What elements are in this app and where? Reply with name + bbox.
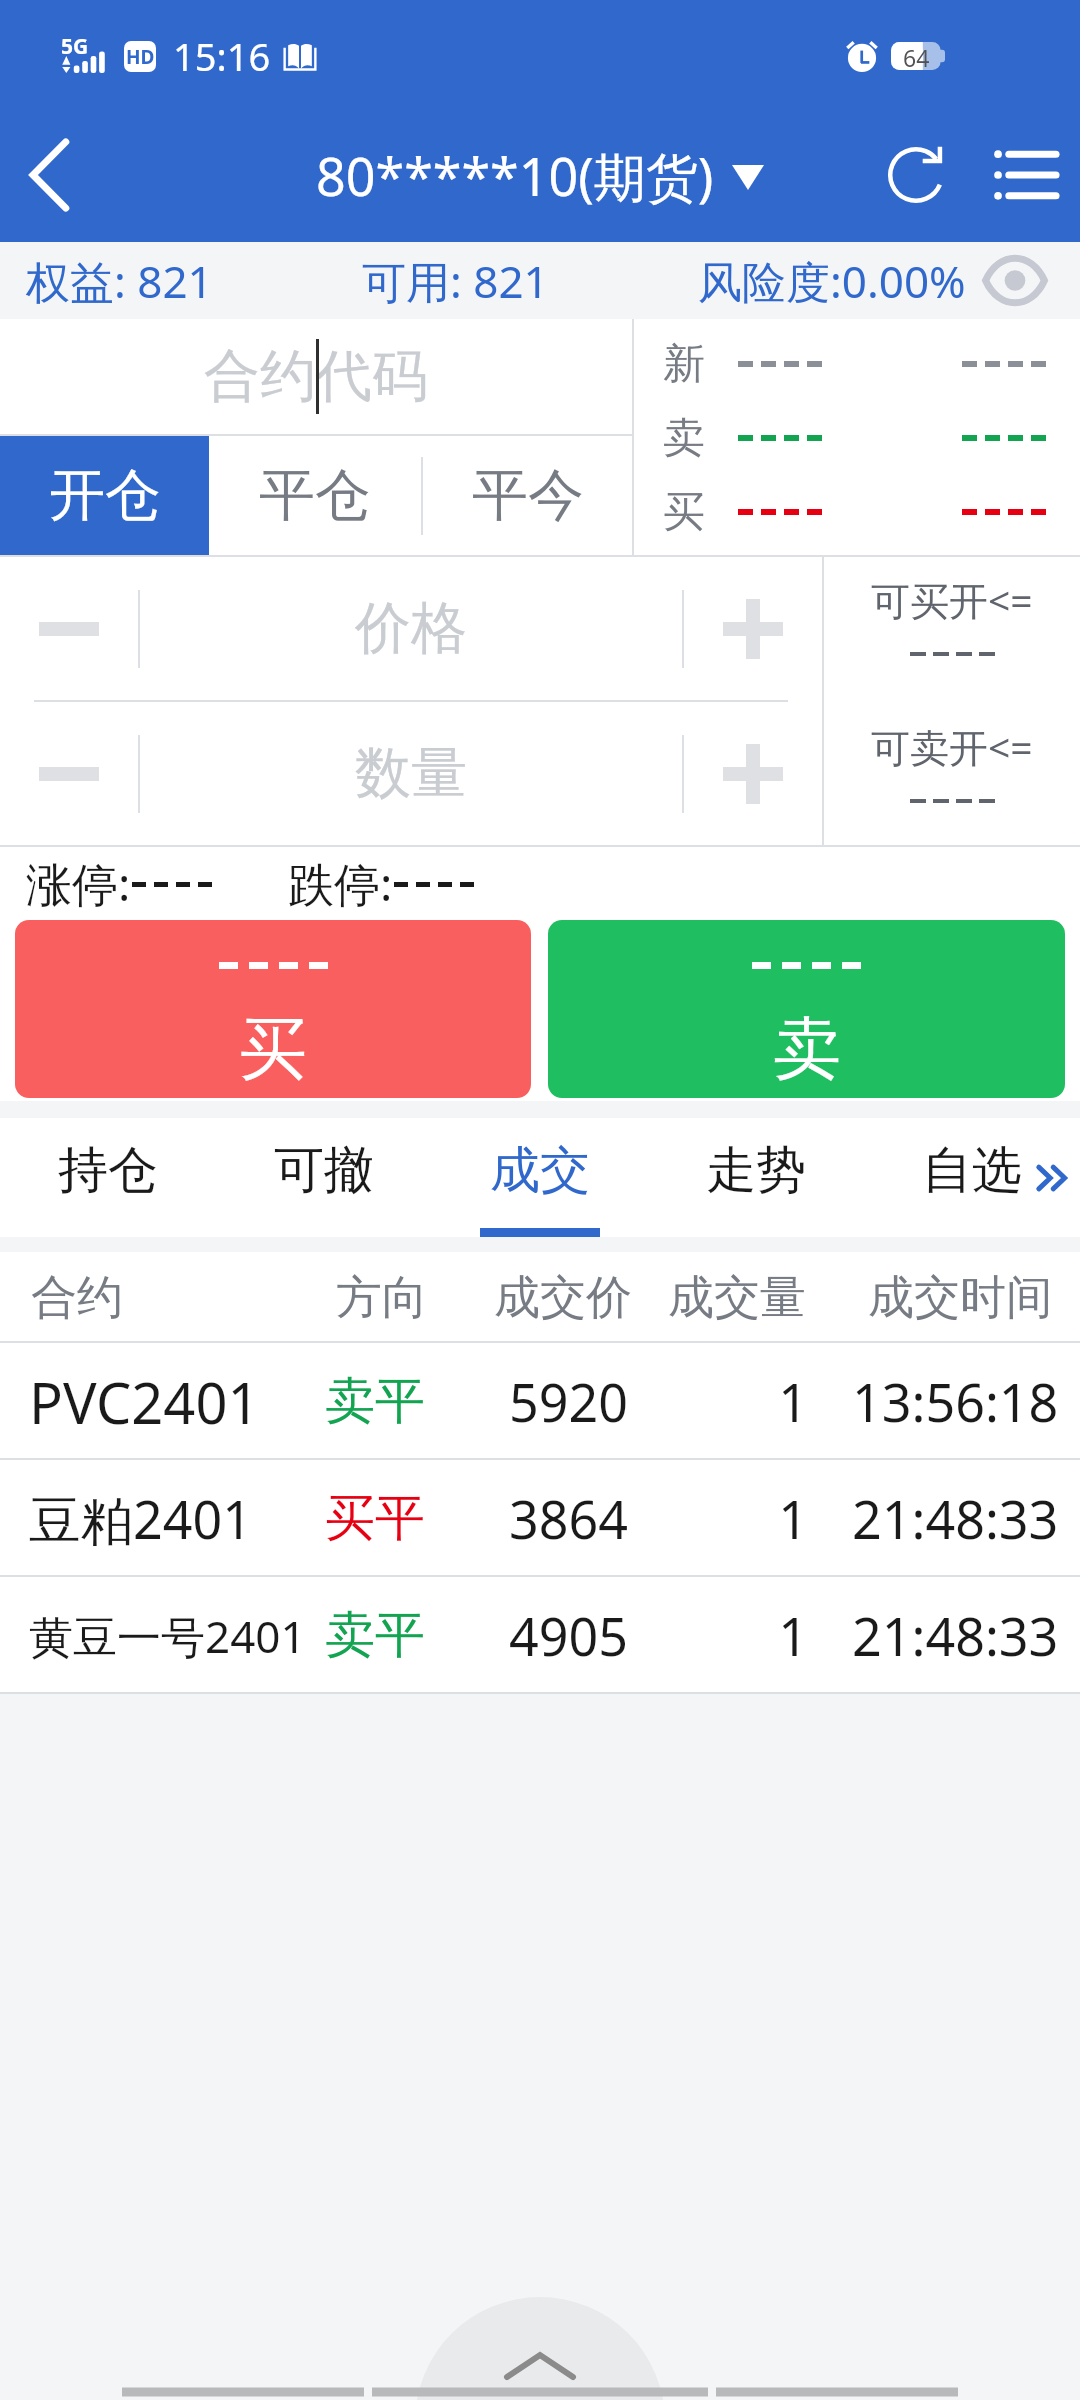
staticText: 平今 bbox=[472, 460, 584, 531]
button[interactable]: 价格 bbox=[140, 557, 682, 700]
staticText: 1 bbox=[640, 1483, 808, 1554]
staticText: 价格 bbox=[355, 593, 467, 664]
staticText: HD bbox=[126, 44, 155, 70]
button[interactable]: Decrease 价格 bbox=[0, 557, 138, 700]
staticText: PVC2401 bbox=[29, 1364, 260, 1440]
button[interactable]: PVC2401 bbox=[0, 1343, 1080, 1460]
staticText: 涨停: bbox=[26, 852, 131, 915]
button[interactable]: 黄豆一号2401 bbox=[0, 1577, 1080, 1694]
button[interactable]: 走势 bbox=[648, 1118, 864, 1237]
button[interactable]: 平今 bbox=[423, 436, 632, 555]
staticText: 可撤 bbox=[274, 1139, 374, 1202]
staticText: 自选 bbox=[922, 1139, 1022, 1202]
staticText: 卖 bbox=[773, 1007, 841, 1093]
button[interactable]: 平仓 bbox=[209, 436, 421, 555]
staticText: 卖平 bbox=[325, 1370, 425, 1433]
staticText: 可卖开<= bbox=[871, 720, 1033, 773]
staticText: 跌停: bbox=[288, 852, 393, 915]
button[interactable]: 豆粕2401 bbox=[0, 1460, 1080, 1577]
staticText: 平仓 bbox=[259, 460, 371, 531]
staticText: 方向 bbox=[336, 1269, 428, 1327]
staticText: 80*****10(期货) bbox=[316, 140, 714, 211]
button[interactable]: Refresh bbox=[862, 108, 970, 242]
button[interactable]: 开仓 bbox=[0, 436, 209, 555]
staticText: 可买开<= bbox=[871, 573, 1033, 626]
staticText: 21:48:33 bbox=[852, 1483, 1059, 1554]
staticText: 合约 bbox=[31, 1269, 123, 1327]
button[interactable]: 卖 bbox=[548, 920, 1065, 1098]
staticText: 卖平 bbox=[325, 1604, 425, 1667]
staticText: 合约代码 bbox=[204, 341, 428, 412]
button[interactable]: Back bbox=[0, 108, 120, 242]
button[interactable]: 持仓 bbox=[0, 1118, 216, 1237]
button[interactable]: 成交 bbox=[432, 1118, 648, 1237]
staticText: 21:48:33 bbox=[852, 1600, 1059, 1671]
staticText: 15:16 bbox=[173, 30, 271, 82]
staticText: 权益: 821 bbox=[26, 251, 213, 311]
button[interactable]: 合约代码 bbox=[0, 319, 632, 434]
button[interactable]: Increase 数量 bbox=[684, 702, 822, 845]
staticText: 成交量 bbox=[668, 1269, 806, 1327]
staticText: 买 bbox=[239, 1007, 307, 1093]
button[interactable]: 自选 bbox=[864, 1118, 1080, 1237]
button[interactable]: Increase 价格 bbox=[684, 557, 822, 700]
staticText: 1 bbox=[640, 1366, 808, 1437]
staticText: 买 bbox=[663, 486, 705, 539]
staticText: 成交 bbox=[490, 1139, 590, 1202]
staticText: 买平 bbox=[325, 1487, 425, 1550]
button[interactable]: 买 bbox=[15, 920, 531, 1098]
staticText: 开仓 bbox=[49, 460, 161, 531]
staticText: 成交时间 bbox=[868, 1269, 1052, 1327]
button[interactable]: Menu bbox=[970, 108, 1080, 242]
staticText: 走势 bbox=[706, 1139, 806, 1202]
staticText: 4905 bbox=[450, 1600, 628, 1671]
button[interactable]: 数量 bbox=[140, 702, 682, 845]
button[interactable]: Decrease 数量 bbox=[0, 702, 138, 845]
staticText: 64 bbox=[903, 42, 930, 70]
staticText: 3864 bbox=[450, 1483, 628, 1554]
button[interactable]: 80*****10(期货) bbox=[316, 140, 764, 211]
staticText: 黄豆一号2401 bbox=[29, 1606, 306, 1666]
staticText: 豆粕2401 bbox=[29, 1483, 252, 1554]
staticText: 数量 bbox=[355, 738, 467, 809]
button[interactable]: More tabs bbox=[1024, 1118, 1080, 1237]
button[interactable]: Toggle balance visibility bbox=[960, 242, 1070, 319]
staticText: 成交价 bbox=[494, 1269, 632, 1327]
staticText: 新 bbox=[663, 338, 705, 391]
button[interactable]: 可撤 bbox=[216, 1118, 432, 1237]
staticText: 5920 bbox=[450, 1366, 628, 1437]
staticText: 1 bbox=[640, 1600, 808, 1671]
staticText: 13:56:18 bbox=[852, 1366, 1059, 1437]
staticText: 可用: 821 bbox=[362, 251, 549, 311]
staticText: 卖 bbox=[663, 412, 705, 465]
staticText: 5G bbox=[61, 32, 89, 61]
staticText: 风险度:0.00% bbox=[698, 251, 966, 311]
staticText: 持仓 bbox=[58, 1139, 158, 1202]
